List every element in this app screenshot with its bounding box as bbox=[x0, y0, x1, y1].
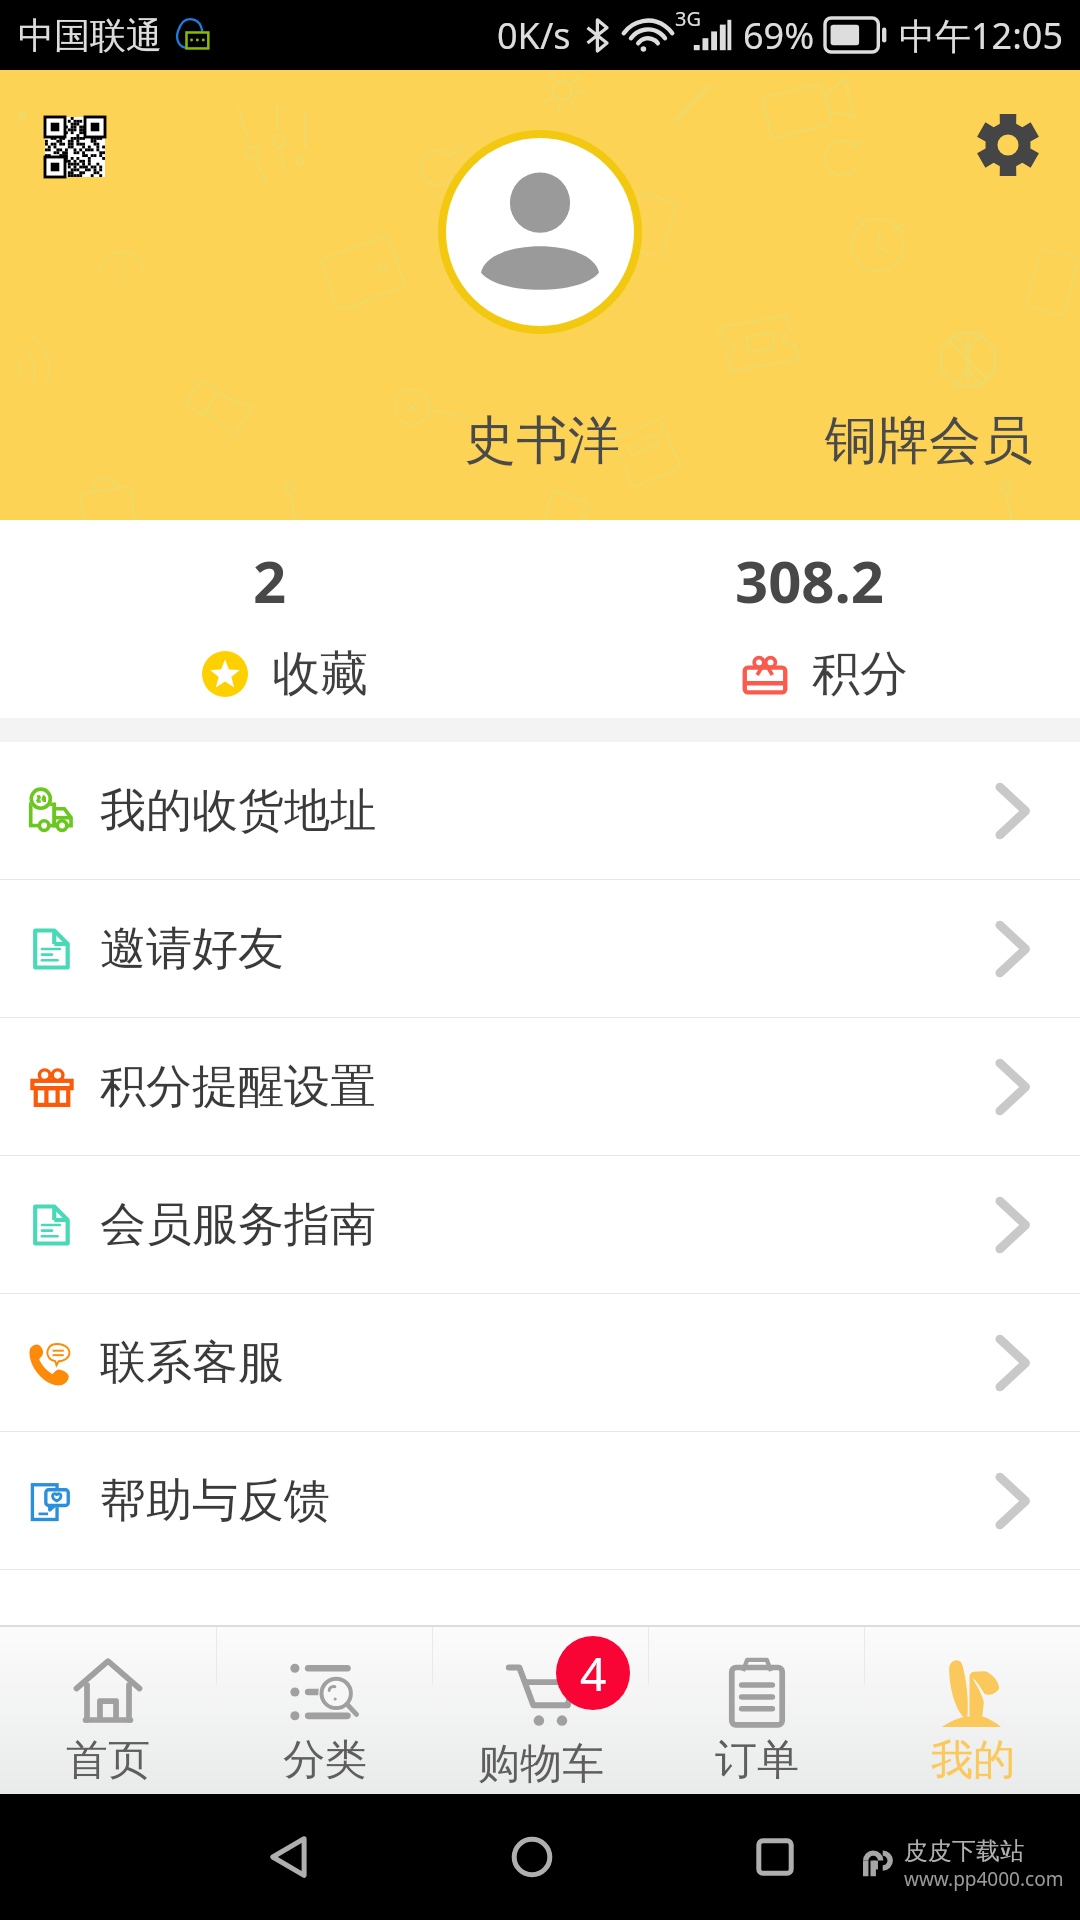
button[interactable]: Settings bbox=[954, 91, 1062, 199]
staticText: 中国联通 bbox=[18, 13, 162, 58]
button[interactable]: 分类 bbox=[217, 1627, 432, 1794]
button[interactable]: 积分提醒设置 bbox=[0, 1018, 1080, 1155]
staticText: 308.2 bbox=[735, 541, 885, 620]
staticText: 会员服务指南 bbox=[100, 1196, 376, 1254]
staticText: 2 bbox=[253, 541, 287, 620]
staticText: 联系客服 bbox=[100, 1334, 284, 1392]
staticText: 69% bbox=[743, 11, 815, 60]
staticText: 4 bbox=[580, 1642, 607, 1705]
staticText: 史书洋 bbox=[464, 408, 620, 474]
staticText: 我的 bbox=[931, 1734, 1015, 1787]
staticText: 购物车 bbox=[478, 1738, 604, 1791]
staticText: 首页 bbox=[66, 1734, 150, 1787]
button[interactable]: 我的收货地址 bbox=[0, 742, 1080, 879]
staticText: 积分提醒设置 bbox=[100, 1058, 376, 1116]
staticText: www.pp4000.com bbox=[904, 1866, 1064, 1892]
staticText: 积分 bbox=[812, 644, 908, 704]
button[interactable]: 联系客服 bbox=[0, 1294, 1080, 1431]
button[interactable]: 邀请好友 bbox=[0, 880, 1080, 1017]
button[interactable]: 订单 bbox=[649, 1627, 864, 1794]
button[interactable]: 2 bbox=[0, 520, 540, 718]
button[interactable]: 首页 bbox=[0, 1627, 216, 1794]
button[interactable]: Recent apps bbox=[748, 1830, 802, 1884]
button[interactable]: Back bbox=[262, 1830, 316, 1884]
staticText: 分类 bbox=[283, 1734, 367, 1787]
button[interactable]: Profile photo bbox=[446, 138, 634, 326]
staticText: 3G bbox=[675, 5, 701, 32]
button[interactable]: 会员服务指南 bbox=[0, 1156, 1080, 1293]
button[interactable]: 我的 bbox=[865, 1627, 1080, 1794]
staticText: 中午12:05 bbox=[899, 11, 1064, 60]
staticText: 我的收货地址 bbox=[100, 782, 376, 840]
button[interactable]: 308.2 bbox=[540, 520, 1080, 718]
button[interactable]: 4 bbox=[433, 1627, 648, 1794]
staticText: 铜牌会员 bbox=[825, 408, 1033, 474]
staticText: 邀请好友 bbox=[100, 920, 284, 978]
staticText: 帮助与反馈 bbox=[100, 1472, 330, 1530]
staticText: 订单 bbox=[715, 1734, 799, 1787]
staticText: 收藏 bbox=[272, 644, 368, 704]
button[interactable]: 帮助与反馈 bbox=[0, 1432, 1080, 1569]
staticText: 皮皮下载站 bbox=[904, 1836, 1024, 1866]
button[interactable]: My QR code bbox=[45, 117, 105, 177]
staticText: 0K/s bbox=[497, 11, 571, 60]
button[interactable]: Home bbox=[505, 1830, 559, 1884]
